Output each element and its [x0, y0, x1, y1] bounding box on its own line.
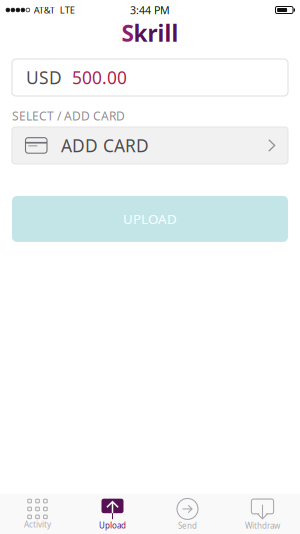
- button[interactable]: Activity: [0, 496, 75, 533]
- staticText: 500.00: [72, 66, 127, 89]
- staticText: ADD CARD: [61, 134, 149, 157]
- staticText: USD: [26, 66, 62, 89]
- staticText: Activity: [24, 519, 51, 530]
- staticText: Upload: [99, 520, 126, 531]
- button[interactable]: Send: [150, 494, 225, 534]
- staticText: SELECT / ADD CARD: [12, 108, 125, 124]
- staticText: LTE: [60, 4, 75, 16]
- button[interactable]: UPLOAD: [0, 196, 300, 242]
- staticText: AT&T: [34, 4, 55, 16]
- button[interactable]: Upload: [75, 495, 150, 534]
- button[interactable]: ADD CARD: [0, 127, 300, 164]
- button[interactable]: Withdraw: [225, 494, 300, 534]
- staticText: Withdraw: [245, 520, 280, 531]
- staticText: Send: [178, 520, 197, 531]
- staticText: UPLOAD: [123, 210, 177, 228]
- staticText: 3:44 PM: [130, 3, 170, 17]
- staticText: krill: [133, 18, 178, 48]
- staticText: S: [121, 18, 133, 48]
